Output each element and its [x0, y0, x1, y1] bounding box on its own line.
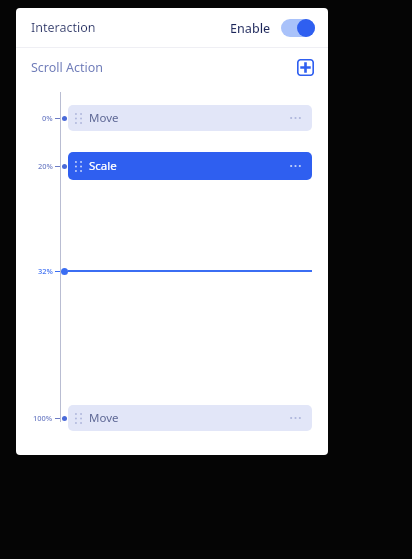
button[interactable]: Move [68, 405, 312, 431]
button[interactable]: More options for Scale [288, 159, 302, 173]
staticText: 0% [42, 113, 53, 123]
staticText: Enable [230, 20, 271, 37]
staticText: 100% [33, 413, 53, 423]
button[interactable]: More options for Move [288, 111, 302, 125]
button[interactable]: Move [68, 105, 312, 131]
staticText: Scroll Action [31, 59, 104, 76]
button[interactable]: More options for Move [288, 411, 302, 425]
staticText: Move [89, 110, 119, 126]
staticText: 20% [38, 161, 53, 171]
staticText: 32% [38, 266, 53, 276]
staticText: Move [89, 410, 119, 426]
staticText: Scale [89, 158, 117, 174]
staticText: Interaction [31, 19, 96, 36]
button[interactable]: Enable [230, 19, 315, 37]
button[interactable]: Scale [68, 152, 312, 180]
button[interactable]: Add scroll action [295, 57, 315, 77]
button[interactable]: Enable interaction toggle [281, 19, 315, 37]
